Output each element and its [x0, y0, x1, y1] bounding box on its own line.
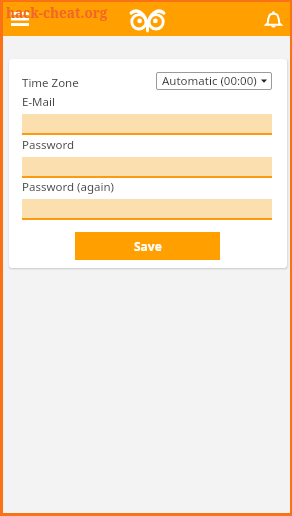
- button[interactable]: [22, 114, 272, 135]
- staticText: Automatic (00:00): [162, 73, 257, 89]
- button[interactable]: Home: [128, 2, 166, 36]
- staticText: E-Mail: [22, 94, 55, 110]
- staticText: Password (again): [22, 179, 114, 195]
- button[interactable]: [22, 199, 272, 220]
- button[interactable]: Save: [75, 232, 220, 260]
- button[interactable]: [22, 157, 272, 178]
- staticText: hack-cheat.org: [6, 4, 108, 22]
- staticText: Password: [22, 137, 75, 153]
- button[interactable]: Automatic (00:00): [156, 72, 272, 90]
- button[interactable]: Menu: [6, 5, 34, 33]
- staticText: Time Zone: [22, 75, 79, 91]
- button[interactable]: Notifications: [259, 5, 287, 33]
- staticText: Save: [134, 238, 162, 254]
